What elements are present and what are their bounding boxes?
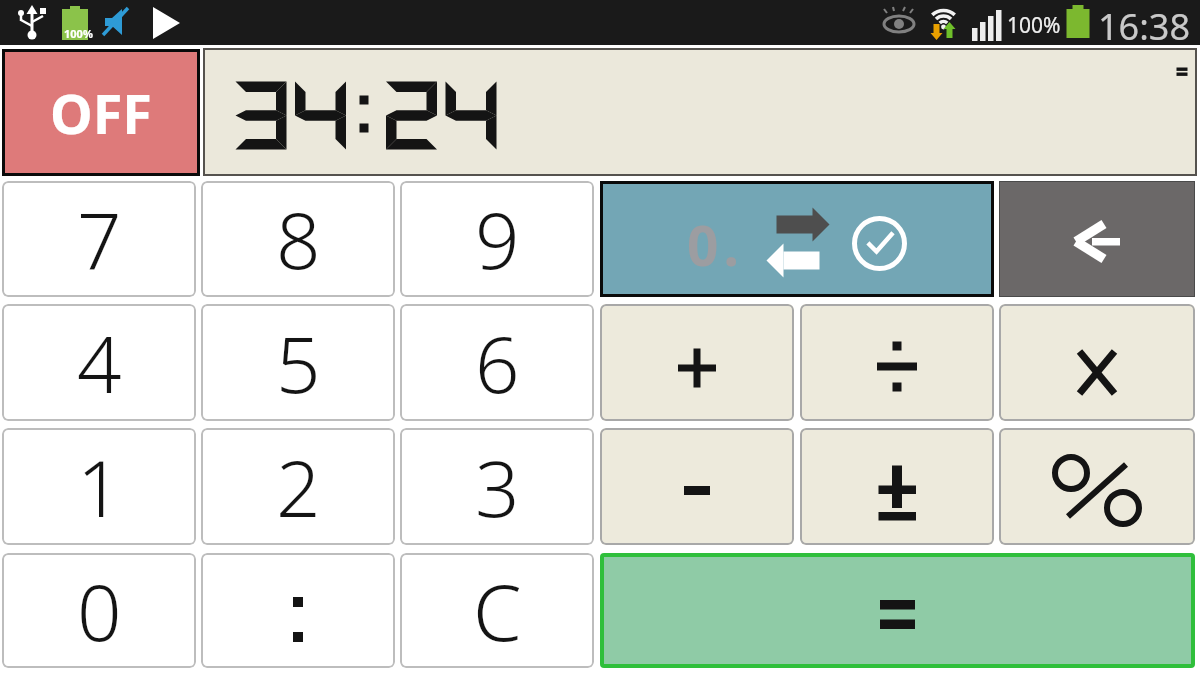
button[interactable] (201, 553, 395, 668)
staticText: C (473, 558, 522, 664)
staticText: 1 (77, 434, 122, 540)
button[interactable]: 4 (2, 304, 196, 421)
staticText: 5 (276, 310, 321, 416)
button[interactable] (600, 428, 794, 545)
staticText: 4 (77, 310, 122, 416)
button[interactable] (600, 304, 794, 421)
staticText: 0 (77, 558, 122, 664)
button[interactable] (604, 557, 1191, 664)
staticText: 6 (475, 310, 520, 416)
button[interactable]: 8 (201, 181, 395, 297)
staticText: 2 (276, 434, 321, 540)
staticText: 16:38 (1098, 2, 1191, 47)
button[interactable]: OFF (5, 52, 197, 173)
button[interactable]: 6 (400, 304, 594, 421)
button[interactable]: 2 (201, 428, 395, 545)
staticText: 8 (276, 186, 321, 292)
staticText: 9 (475, 186, 520, 292)
button[interactable]: 0 (2, 553, 196, 668)
staticText: 100% (64, 26, 93, 41)
staticText: OFF (50, 76, 153, 150)
button[interactable] (800, 304, 994, 421)
staticText: 3 (475, 434, 520, 540)
staticText: 7 (77, 186, 122, 292)
button[interactable] (999, 181, 1195, 297)
button[interactable]: C (400, 553, 594, 668)
button[interactable]: 9 (400, 181, 594, 297)
button[interactable]: 0. (603, 184, 991, 294)
staticText: 0. (687, 207, 744, 282)
button[interactable]: 7 (2, 181, 196, 297)
button[interactable]: 3 (400, 428, 594, 545)
button[interactable]: 1 (2, 428, 196, 545)
button[interactable] (999, 428, 1195, 545)
staticText: 100% (1007, 11, 1061, 40)
button[interactable] (800, 428, 994, 545)
button[interactable]: 5 (201, 304, 395, 421)
button[interactable] (999, 304, 1195, 421)
